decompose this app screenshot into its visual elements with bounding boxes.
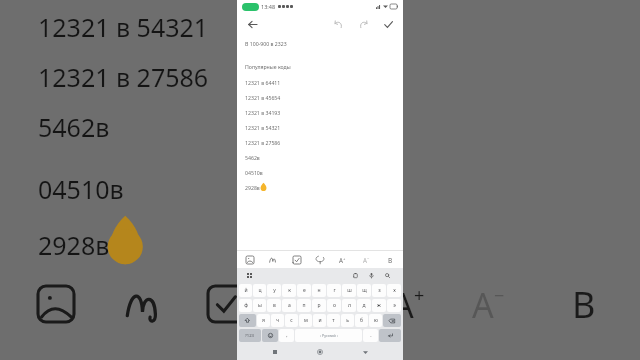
button[interactable]: Highlight — [313, 253, 327, 267]
staticText: р — [317, 302, 321, 309]
button[interactable]: Decrease text size — [360, 253, 374, 267]
button[interactable]: Home — [313, 345, 327, 359]
staticText: + — [343, 256, 346, 261]
staticText: B — [572, 280, 596, 329]
button[interactable]: н — [312, 284, 326, 297]
button[interactable]: щ — [357, 284, 371, 297]
staticText: й — [244, 287, 248, 294]
button[interactable]: о — [327, 299, 341, 312]
staticText: з — [378, 287, 381, 294]
staticText: а — [288, 302, 291, 309]
staticText: в — [273, 302, 276, 309]
staticText: 12321 в 27586 — [38, 60, 209, 94]
button[interactable]: ч — [271, 314, 284, 327]
button[interactable]: , — [279, 329, 294, 342]
staticText: х — [393, 287, 396, 294]
button[interactable]: ц — [253, 284, 266, 297]
button[interactable]: Emoji — [262, 329, 278, 342]
button[interactable]: п — [297, 299, 311, 312]
staticText: 12321 в 27586 — [245, 139, 281, 146]
button[interactable]: Enter — [379, 329, 401, 342]
button[interactable]: Back — [358, 345, 372, 359]
staticText: 12321 в 54321 — [38, 10, 209, 44]
staticText: Популярные коды — [245, 63, 291, 70]
staticText: B — [388, 256, 393, 265]
button[interactable]: г — [327, 284, 341, 297]
button[interactable]: Bold — [383, 253, 397, 267]
staticText: щ — [362, 287, 367, 294]
staticText: ц — [258, 287, 262, 294]
staticText: 2928в — [245, 184, 260, 191]
staticText: A — [392, 282, 414, 328]
button[interactable]: ь — [341, 314, 354, 327]
staticText: 12321 в 34193 — [245, 109, 281, 116]
button[interactable]: ф — [239, 299, 252, 312]
button[interactable]: х — [387, 284, 401, 297]
button[interactable]: Backspace — [383, 314, 401, 327]
button[interactable]: л — [342, 299, 356, 312]
button[interactable]: и — [313, 314, 326, 327]
button[interactable]: Increase text size — [336, 253, 350, 267]
staticText: э — [393, 302, 396, 309]
button[interactable]: Insert image — [243, 253, 257, 267]
button[interactable]: Symbols — [239, 329, 261, 342]
button[interactable]: Back — [244, 16, 260, 32]
button[interactable]: Checklist — [290, 253, 304, 267]
button[interactable]: ы — [253, 299, 266, 312]
staticText: е — [303, 287, 306, 294]
staticText: т — [332, 317, 335, 324]
button[interactable]: р — [312, 299, 326, 312]
button[interactable]: Search — [381, 269, 393, 281]
button[interactable]: э — [387, 299, 401, 312]
button[interactable]: й — [239, 284, 252, 297]
staticText: ю — [374, 317, 378, 324]
button[interactable]: Recents — [268, 345, 282, 359]
button[interactable]: Shift — [239, 314, 256, 327]
staticText: ч — [276, 317, 279, 324]
button[interactable]: б — [355, 314, 368, 327]
button[interactable]: ш — [342, 284, 356, 297]
button[interactable]: Draw — [266, 253, 280, 267]
staticText: 12321 в 54321 — [245, 124, 281, 131]
staticText: я — [262, 317, 265, 324]
staticText: ф — [244, 302, 248, 309]
button[interactable]: у — [267, 284, 281, 297]
button[interactable]: Voice input — [365, 269, 377, 281]
button[interactable]: а — [282, 299, 296, 312]
button[interactable]: Clipboard — [349, 269, 361, 281]
button[interactable]: Done — [380, 16, 396, 32]
staticText: , — [286, 332, 288, 339]
button[interactable]: я — [257, 314, 270, 327]
staticText: В 100-900 в 2323 — [245, 40, 287, 47]
button[interactable]: в — [267, 299, 281, 312]
staticText: п — [302, 302, 306, 309]
button[interactable]: з — [372, 284, 386, 297]
staticText: 2928в — [38, 228, 110, 262]
staticText: . — [370, 332, 372, 339]
staticText: ?123 — [245, 333, 255, 339]
button[interactable]: т — [327, 314, 340, 327]
button[interactable]: ж — [372, 299, 386, 312]
button[interactable]: . — [363, 329, 378, 342]
button[interactable]: м — [299, 314, 312, 327]
button[interactable]: д — [357, 299, 371, 312]
staticText: A — [472, 282, 494, 328]
staticText: к — [288, 287, 291, 294]
button[interactable]: ю — [369, 314, 382, 327]
staticText: м — [304, 317, 308, 324]
button[interactable]: е — [297, 284, 311, 297]
button[interactable]: Undo — [330, 16, 346, 32]
button[interactable]: к — [282, 284, 296, 297]
button[interactable]: Redo — [355, 16, 371, 32]
staticText: A — [363, 256, 367, 264]
staticText: 12321 в 45654 — [245, 94, 281, 101]
button[interactable]: с — [285, 314, 298, 327]
staticText: 04510в — [245, 169, 263, 176]
button[interactable]: ‹ Русский › — [295, 329, 362, 342]
button[interactable]: Keyboard menu — [243, 269, 255, 281]
staticText: л — [348, 302, 351, 309]
staticText: у — [273, 287, 276, 294]
staticText: ь — [346, 317, 349, 324]
staticText: о — [333, 302, 336, 309]
staticText: 5462в — [38, 110, 110, 144]
